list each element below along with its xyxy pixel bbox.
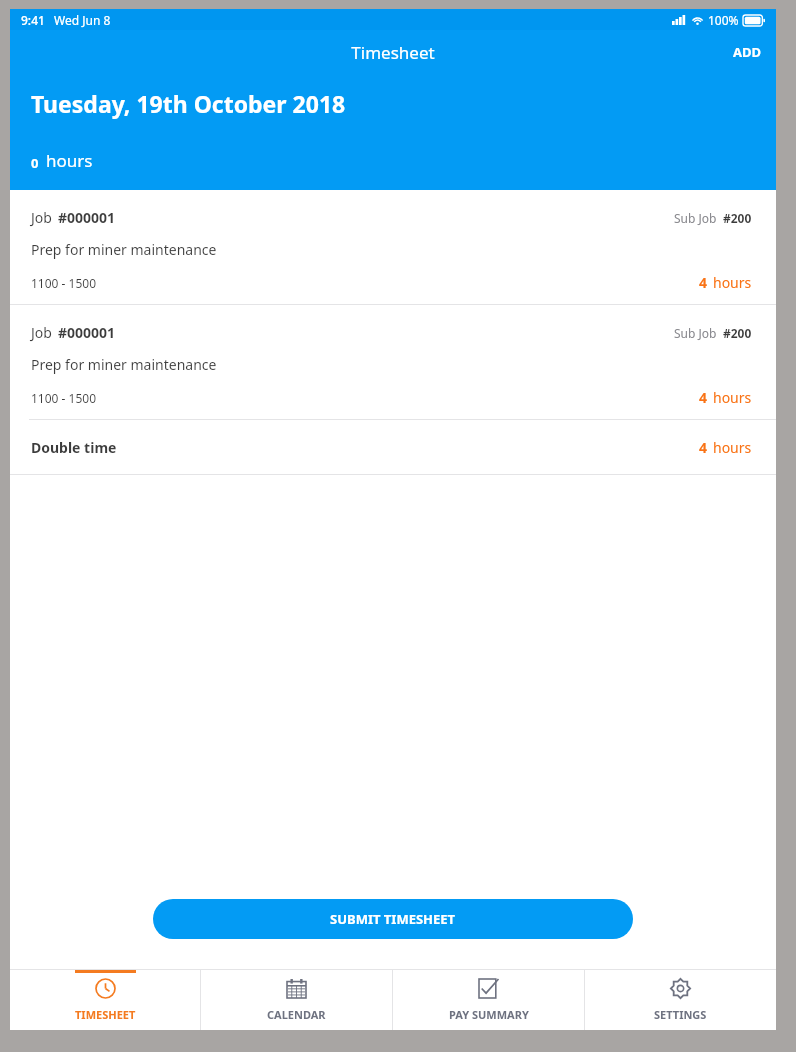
staticText: #000001	[58, 323, 116, 342]
staticText: PAY SUMMARY	[449, 1007, 529, 1022]
staticText: 4	[699, 273, 708, 292]
staticText: CALENDAR	[267, 1007, 326, 1022]
button[interactable]: CALENDAR	[201, 970, 392, 1030]
staticText: #200	[723, 210, 752, 226]
staticText: TIMESHEET	[75, 1007, 136, 1022]
staticText: hours	[713, 273, 752, 292]
staticText: 4	[699, 388, 708, 407]
staticText: 1100 - 1500	[31, 390, 97, 406]
staticText: 9:41	[21, 12, 45, 28]
staticText: 0	[31, 154, 39, 172]
staticText: ADD	[733, 43, 762, 61]
button[interactable]: Double time	[10, 420, 776, 474]
button[interactable]: Job	[10, 190, 776, 304]
staticText: hours	[713, 388, 752, 407]
staticText: Timesheet	[351, 41, 435, 64]
staticText: Sub Job	[674, 325, 717, 341]
staticText: Job	[31, 323, 52, 342]
staticText: Sub Job	[674, 210, 717, 226]
button[interactable]: PAY SUMMARY	[393, 970, 584, 1030]
button[interactable]: SETTINGS	[585, 970, 776, 1030]
button[interactable]: SUBMIT TIMESHEET	[153, 899, 633, 939]
staticText: #000001	[58, 208, 116, 227]
staticText: Double time	[31, 438, 117, 457]
staticText: Prep for miner maintenance	[31, 240, 217, 259]
button[interactable]: Job	[10, 305, 776, 419]
button[interactable]: ADD	[719, 35, 776, 69]
staticText: hours	[46, 149, 93, 172]
staticText: SETTINGS	[654, 1007, 707, 1022]
staticText: SUBMIT TIMESHEET	[330, 910, 456, 928]
staticText: Tuesday, 19th October 2018	[31, 88, 346, 119]
staticText: #200	[723, 325, 752, 341]
staticText: 1100 - 1500	[31, 275, 97, 291]
staticText: Wed Jun 8	[54, 12, 111, 28]
staticText: Prep for miner maintenance	[31, 355, 217, 374]
button[interactable]: TIMESHEET	[10, 970, 200, 1030]
staticText: Job	[31, 208, 52, 227]
staticText: hours	[713, 438, 752, 457]
staticText: 100%	[708, 12, 739, 28]
staticText: 4	[699, 438, 708, 457]
